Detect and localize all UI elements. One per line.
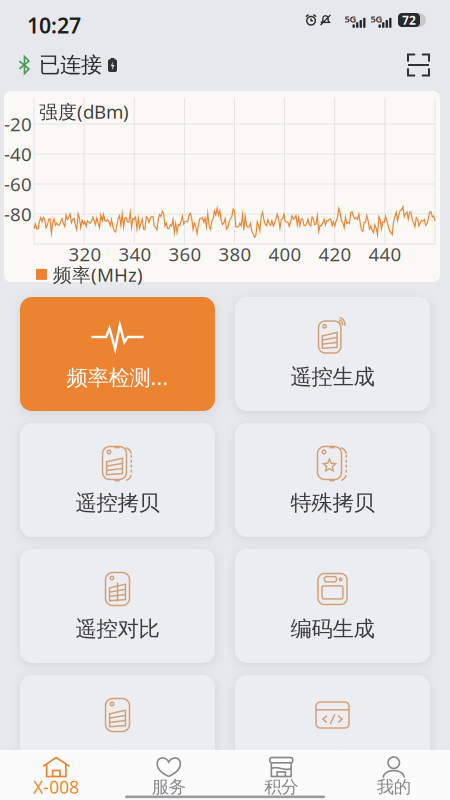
staticText: 频率检测... bbox=[66, 363, 168, 391]
staticText: 400 bbox=[268, 242, 301, 266]
staticText: 积分 bbox=[264, 776, 298, 798]
staticText: 已连接 bbox=[39, 52, 102, 78]
staticText: 特殊拷贝 bbox=[290, 490, 374, 516]
staticText: 5G bbox=[344, 13, 356, 25]
staticText: -80 bbox=[4, 202, 32, 226]
button[interactable]: 编码生成 bbox=[235, 549, 430, 663]
button[interactable]: 积分 bbox=[225, 750, 337, 800]
staticText: 遥控生成 bbox=[290, 364, 374, 390]
staticText: 380 bbox=[218, 242, 251, 266]
staticText: -20 bbox=[4, 112, 32, 136]
staticText: 72 bbox=[402, 12, 416, 28]
staticText: 5G bbox=[370, 13, 382, 25]
staticText: 10:27 bbox=[27, 11, 81, 39]
staticText: 我的 bbox=[377, 776, 411, 798]
staticText: 强度(dBm) bbox=[39, 99, 129, 124]
button[interactable]: 遥控生成 bbox=[235, 297, 430, 411]
button[interactable] bbox=[235, 675, 430, 789]
button[interactable]: 频率检测... bbox=[20, 297, 215, 411]
button[interactable]: 特殊拷贝 bbox=[235, 423, 430, 537]
button[interactable]: Scan bbox=[399, 45, 438, 84]
staticText: 服务 bbox=[152, 776, 186, 798]
staticText: 频率(MHz) bbox=[53, 262, 143, 287]
staticText: 编码生成 bbox=[290, 616, 374, 642]
button[interactable]: 遥控对比 bbox=[20, 549, 215, 663]
staticText: 360 bbox=[168, 242, 201, 266]
button[interactable]: X-008 bbox=[0, 750, 112, 800]
staticText: X-008 bbox=[33, 775, 79, 798]
staticText: 440 bbox=[368, 242, 401, 266]
staticText: -40 bbox=[4, 142, 32, 166]
staticText: 340 bbox=[118, 242, 151, 266]
staticText: 遥控拷贝 bbox=[75, 490, 159, 516]
staticText: 遥控对比 bbox=[75, 616, 159, 642]
button[interactable]: 服务 bbox=[112, 750, 225, 800]
button[interactable] bbox=[20, 675, 215, 789]
staticText: 420 bbox=[318, 242, 351, 266]
button[interactable]: 我的 bbox=[337, 750, 450, 800]
button[interactable]: 遥控拷贝 bbox=[20, 423, 215, 537]
staticText: -60 bbox=[4, 172, 32, 196]
staticText: 320 bbox=[68, 242, 101, 266]
